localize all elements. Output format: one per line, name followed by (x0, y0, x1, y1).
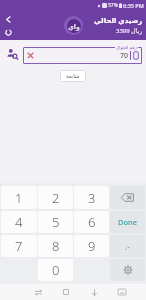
button[interactable]: 1 (1, 186, 37, 209)
staticText: 2 (52, 189, 60, 207)
button[interactable]: Clear (26, 51, 35, 60)
staticText: 0 (52, 261, 60, 279)
button[interactable]: 0 (38, 259, 73, 281)
button[interactable]: Clear (23, 47, 142, 64)
staticText: 70 (120, 51, 129, 61)
button[interactable]: 7 (1, 235, 37, 257)
button[interactable]: Refresh (3, 27, 14, 38)
staticText: .- (125, 241, 130, 252)
staticText: 6:35 PM (123, 2, 144, 9)
button[interactable]: Recents (52, 284, 80, 300)
button[interactable]: Hide keyboard (80, 284, 108, 300)
staticText: 9 (88, 237, 96, 255)
staticText: 3399 ريال (116, 27, 143, 35)
staticText: متابعة (66, 73, 80, 79)
button[interactable]: 9 (74, 235, 109, 257)
button[interactable]: 4 (1, 211, 37, 233)
button[interactable]: 3 (74, 186, 109, 209)
staticText: 5 (52, 213, 60, 231)
button[interactable]: Symbols (110, 235, 145, 257)
button[interactable]: Keyboard settings (110, 259, 145, 281)
button[interactable]: Back (3, 14, 14, 25)
staticText: رصيدي الحالي (94, 16, 143, 26)
staticText: 6 (88, 213, 96, 231)
button[interactable]: متابعة (60, 70, 86, 82)
staticText: واي (68, 23, 80, 30)
button[interactable]: 5 (38, 211, 73, 233)
staticText: 1 (15, 189, 23, 207)
button[interactable]: Keyboard (108, 284, 136, 300)
staticText: Done (118, 217, 138, 227)
staticText: 57% (108, 2, 118, 9)
staticText: 8 (52, 237, 60, 255)
staticText: 7 (15, 237, 23, 255)
button[interactable]: 6 (74, 211, 109, 233)
button[interactable]: Switch input method (24, 284, 52, 300)
button[interactable]: Logo (64, 16, 83, 35)
button[interactable]: Done (110, 211, 145, 233)
button[interactable]: 8 (38, 235, 73, 257)
staticText: 3 (88, 189, 96, 207)
staticText: رقم الجوال (116, 44, 137, 50)
button[interactable]: 2 (38, 186, 73, 209)
button[interactable]: Search contacts (2, 44, 22, 64)
button[interactable]: Backspace (110, 186, 145, 209)
staticText: 4 (15, 213, 23, 231)
